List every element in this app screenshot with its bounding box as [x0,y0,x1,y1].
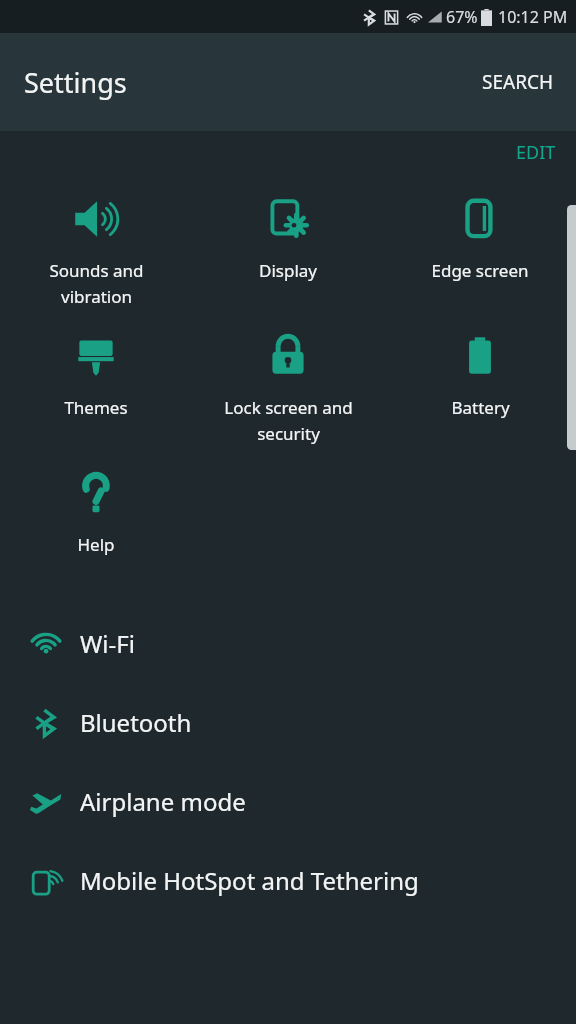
button[interactable]: Sounds and vibration [0,187,192,314]
staticText: Display [259,259,317,282]
staticText: Themes [64,396,128,419]
staticText: Airplane mode [80,785,246,818]
staticText: Mobile HotSpot and Tethering [80,864,419,897]
button[interactable]: Display [192,187,384,288]
button[interactable]: Lock screen and security [192,324,384,451]
button[interactable]: EDIT [496,132,576,173]
button[interactable]: Airplane mode [0,762,576,841]
button[interactable]: Wi-Fi [0,604,576,683]
staticText: Lock screen and security [224,396,353,445]
staticText: Wi-Fi [80,627,135,660]
staticText: Edge screen [431,259,529,282]
staticText: Settings [24,64,127,101]
button[interactable]: Themes [0,324,192,425]
staticText: 67% [446,6,478,28]
button[interactable]: Bluetooth [0,683,576,762]
button[interactable]: Mobile HotSpot and Tethering [0,841,576,920]
button[interactable]: Battery [384,324,576,425]
staticText: Sounds and vibration [49,259,144,308]
staticText: Help [77,533,115,556]
staticText: Battery [451,396,510,419]
staticText: SEARCH [482,69,554,95]
staticText: 10:12 PM [498,6,568,28]
staticText: EDIT [516,140,556,165]
button[interactable]: Help [0,461,192,562]
staticText: Bluetooth [80,706,192,739]
button[interactable]: Edge screen [384,187,576,288]
button[interactable]: SEARCH [460,55,576,109]
